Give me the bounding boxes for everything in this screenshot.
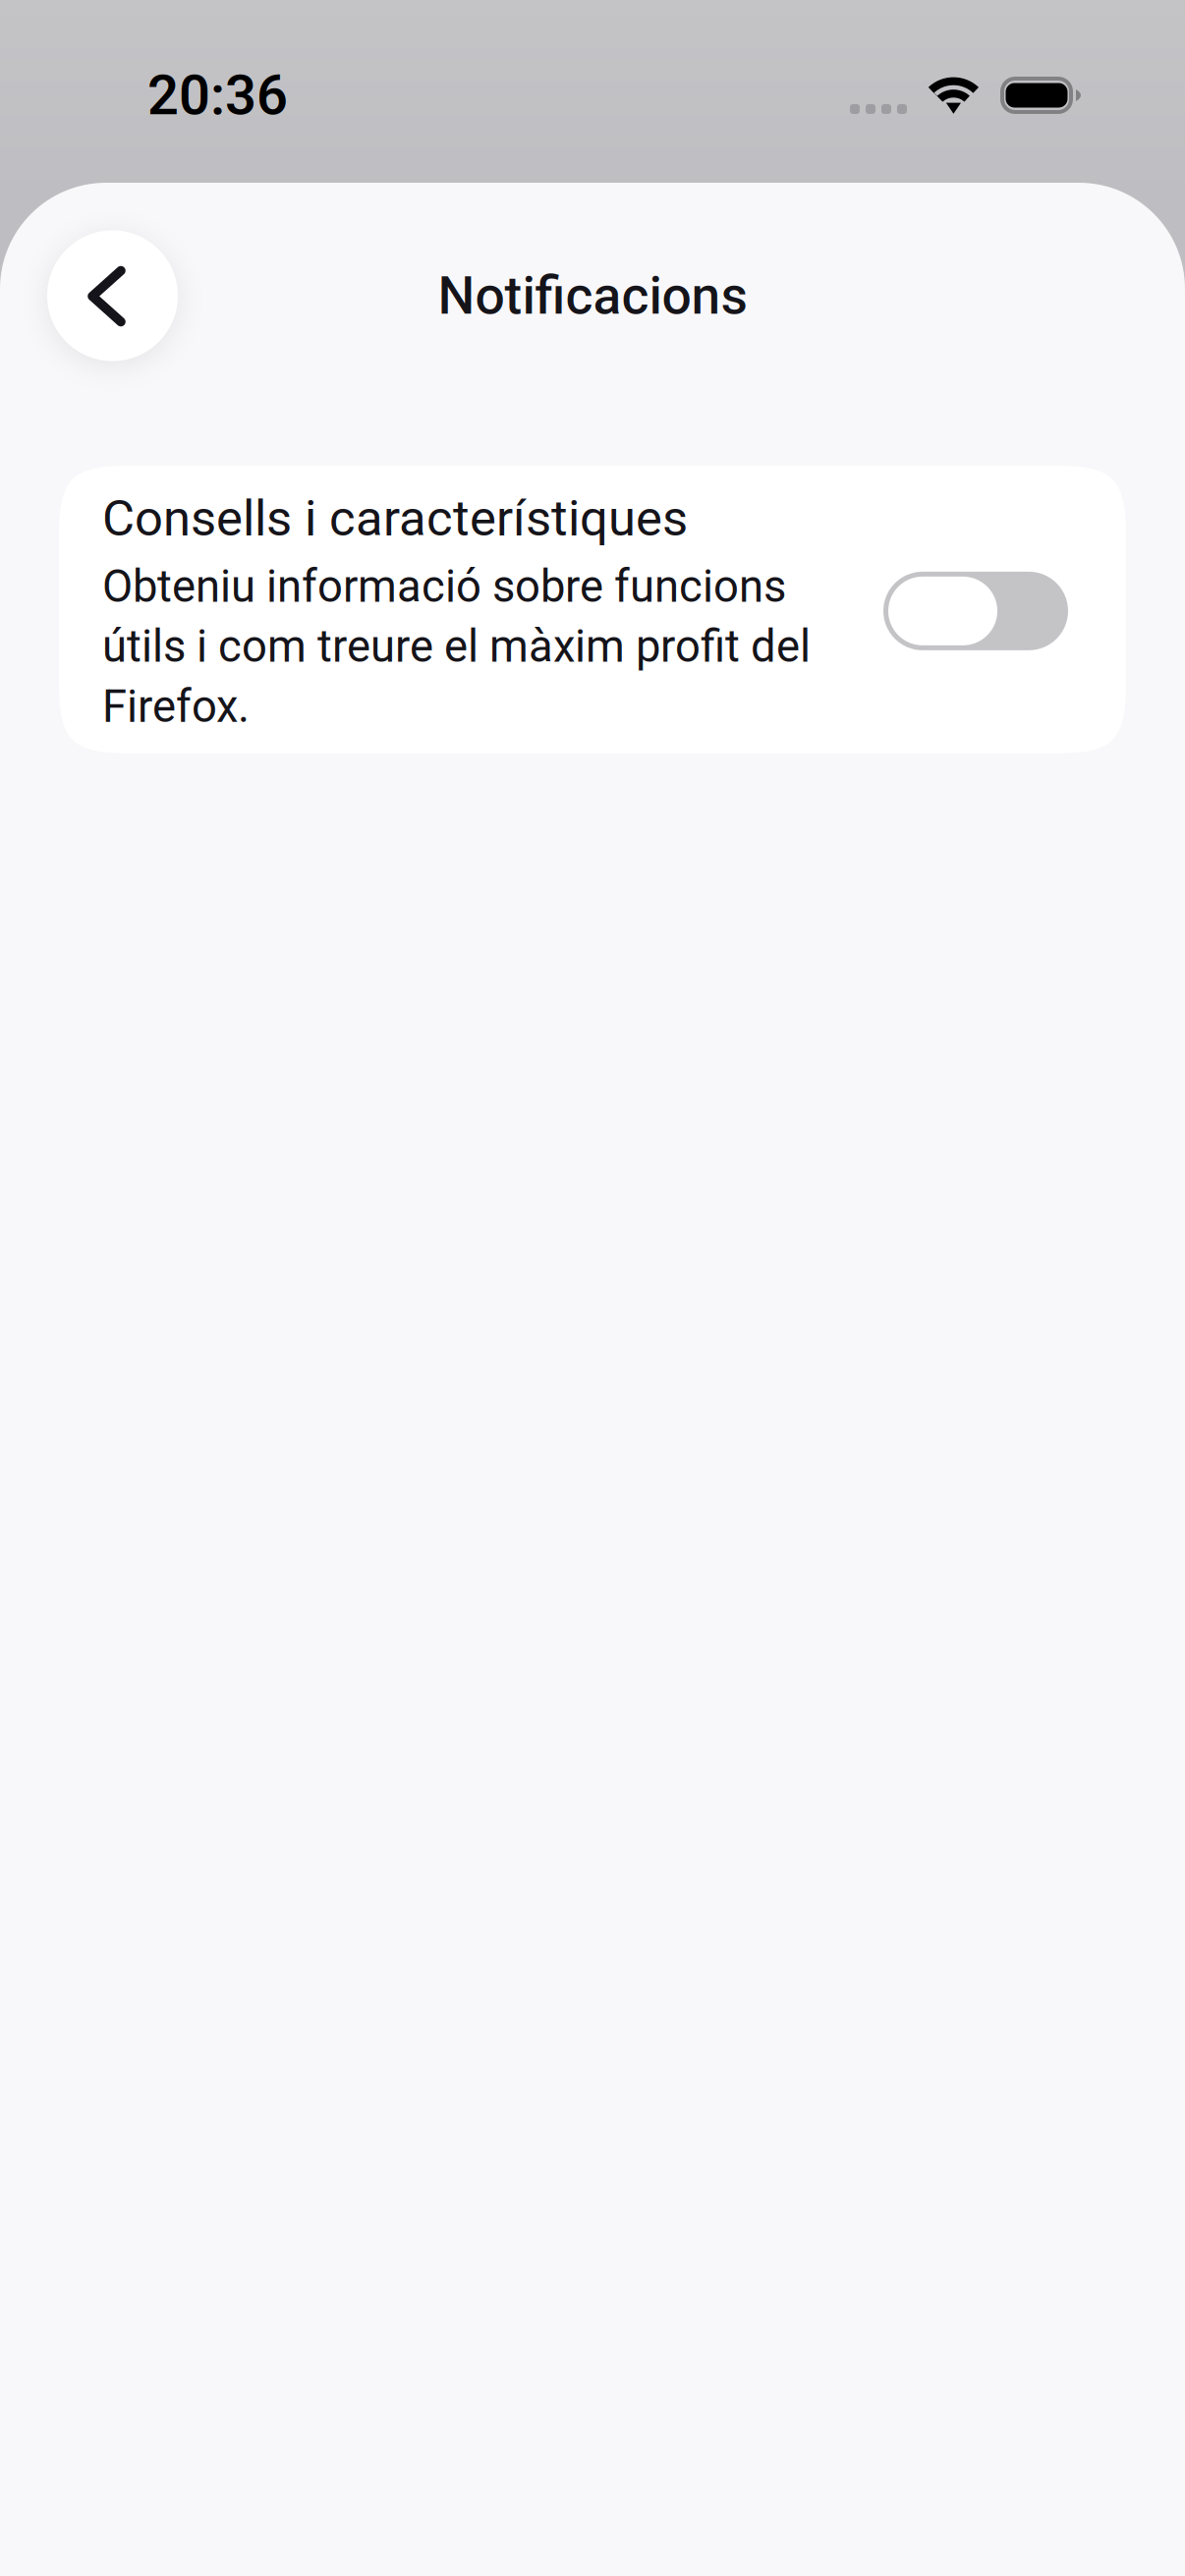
- staticText: 20:36: [147, 63, 288, 128]
- staticText: Consells i característiques: [102, 489, 688, 548]
- button[interactable]: Back: [47, 230, 178, 361]
- staticText: Obteniu informació sobre funcions útils …: [102, 560, 811, 733]
- button[interactable]: Consells i característiques: [883, 572, 1068, 650]
- button[interactable]: Consells i característiques: [59, 466, 1126, 753]
- staticText: Notificacions: [438, 265, 747, 326]
